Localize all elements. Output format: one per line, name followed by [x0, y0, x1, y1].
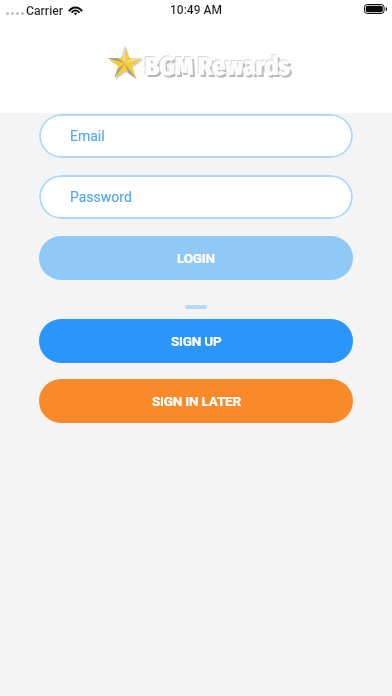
- staticText: 10:49 AM: [170, 3, 222, 17]
- other: BGM Rewards star logo: [107, 46, 143, 81]
- other: Battery full: [364, 4, 389, 14]
- button[interactable]: SIGN IN LATER: [39, 379, 353, 423]
- button[interactable]: SIGN UP: [39, 319, 353, 363]
- button[interactable]: Password: [39, 175, 353, 219]
- staticText: BGM Rewards: [147, 53, 292, 84]
- staticText: Password: [70, 189, 132, 205]
- staticText: Carrier: [26, 4, 64, 18]
- staticText: LOGIN: [177, 250, 215, 266]
- staticText: SIGN UP: [171, 333, 222, 349]
- staticText: SIGN IN LATER: [152, 393, 241, 409]
- staticText: BGM Rewards: [144, 50, 289, 81]
- button[interactable]: Email: [39, 114, 353, 158]
- staticText: Email: [70, 128, 105, 144]
- button[interactable]: LOGIN: [39, 236, 353, 280]
- staticText: BGM Rewards: [145, 51, 290, 82]
- other: Wi-Fi signal: [68, 5, 83, 15]
